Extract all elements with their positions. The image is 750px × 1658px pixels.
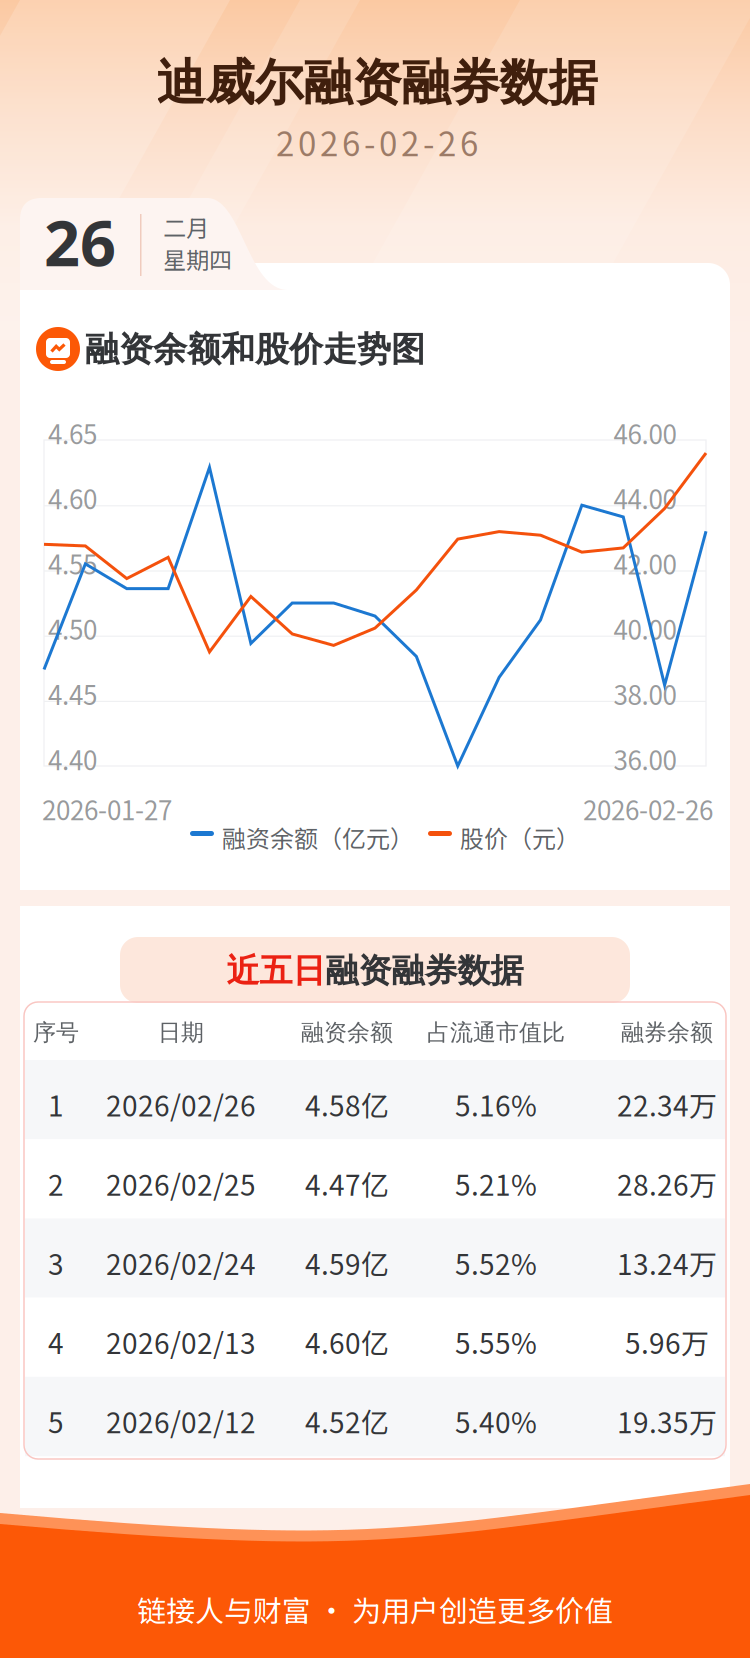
staticText: 36.00 [613,740,676,778]
staticText: 5.21% [455,1163,537,1204]
staticText: 5.40% [455,1401,537,1441]
staticText: 4.59亿 [305,1242,389,1283]
staticText: 融资余额 [301,1018,393,1047]
staticText: 2026-02-26 [276,118,478,166]
staticText: 4.52亿 [305,1401,389,1441]
staticText: 22.34万 [617,1084,717,1124]
staticText: 5 [48,1401,64,1441]
staticText: 近五日 [226,950,325,992]
staticText: 融资融券数据 [325,950,523,992]
staticText: 5.16% [455,1084,537,1124]
staticText: 2026-01-27 [42,790,172,828]
staticText: 2026/02/26 [106,1084,256,1124]
staticText: 4.60亿 [305,1322,389,1362]
staticText: 44.00 [613,479,676,517]
staticText: 28.26万 [617,1163,717,1204]
staticText: 5.55% [455,1322,537,1362]
staticText: 4.65 [48,414,97,452]
staticText: 2026/02/25 [106,1163,256,1204]
staticText: 5.96万 [625,1322,709,1362]
staticText: 46.00 [613,414,676,452]
staticText: 2026/02/24 [106,1242,256,1283]
staticText: 二月 [163,210,209,243]
staticText: 19.35万 [617,1401,717,1441]
staticText: 4.60 [48,479,97,517]
staticText: 2026-02-26 [583,790,713,828]
staticText: 4.55 [48,544,97,582]
staticText: 融券余额 [621,1018,713,1047]
staticText: 4.50 [48,610,97,647]
staticText: 日期 [158,1018,204,1047]
staticText: 26 [44,199,116,285]
staticText: 1 [48,1084,64,1124]
staticText: 38.00 [613,675,676,712]
staticText: 4.58亿 [305,1084,389,1124]
staticText: 股价（元） [460,820,580,855]
staticText: 42.00 [613,544,676,582]
staticText: 2026/02/13 [106,1322,256,1362]
staticText: 4.45 [48,675,97,712]
staticText: 3 [48,1242,64,1283]
staticText: 融资余额和股价走势图 [85,328,425,371]
staticText: 13.24万 [617,1242,717,1283]
staticText: 链接人与财富 · 为用户创造更多价值 [137,1588,613,1630]
staticText: 2026/02/12 [106,1401,256,1441]
staticText: 迪威尔融资融券数据 [156,52,597,114]
staticText: 2 [48,1163,64,1204]
staticText: 4.47亿 [305,1163,389,1204]
staticText: 占流通市值比 [427,1018,565,1047]
staticText: 星期四 [163,242,232,275]
staticText: 序号 [33,1018,79,1047]
staticText: 4.40 [48,740,97,778]
staticText: 5.52% [455,1242,537,1283]
staticText: 40.00 [613,610,676,647]
staticText: 4 [48,1322,64,1362]
staticText: 融资余额（亿元） [222,820,414,855]
